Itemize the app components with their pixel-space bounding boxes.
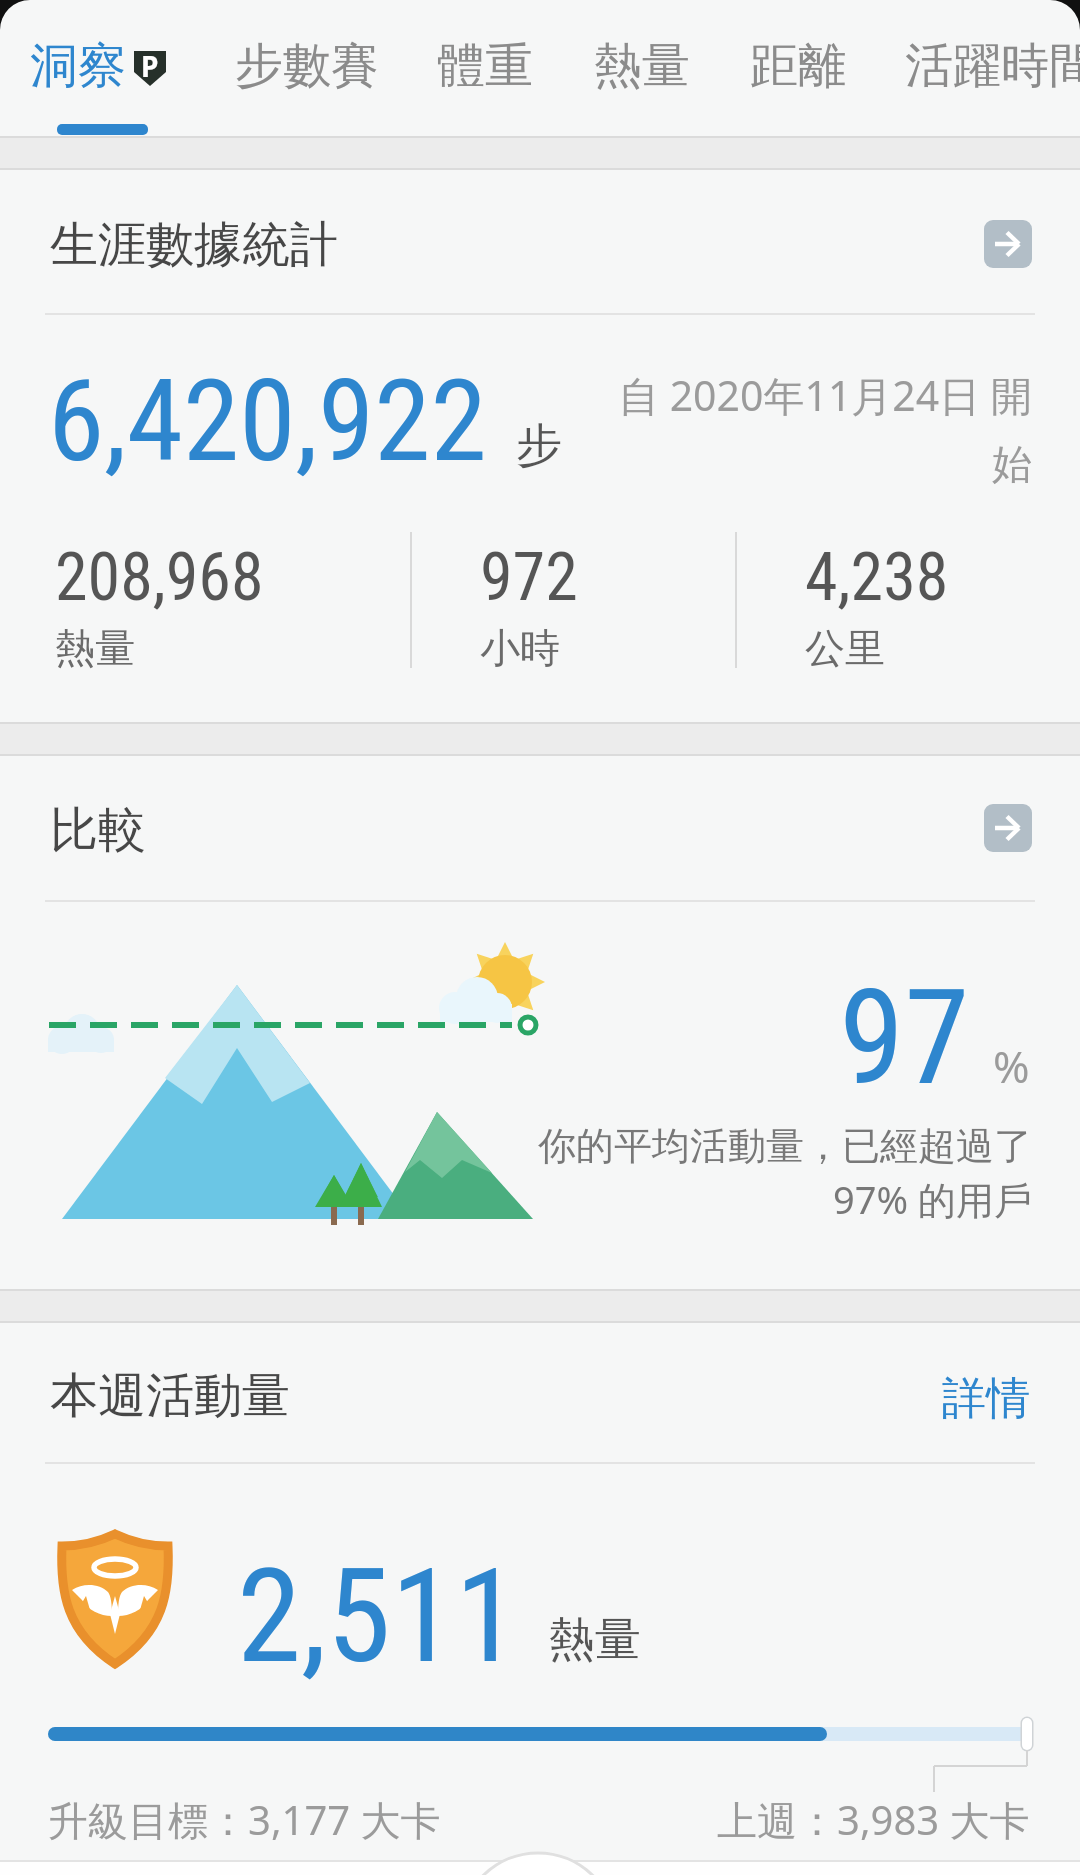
staticText: 公里 — [805, 623, 885, 673]
staticText: 6,420,922 — [48, 354, 487, 488]
staticText: 208,968 — [55, 539, 264, 616]
staticText: 詳情 — [942, 1371, 1030, 1426]
staticText: 972 — [480, 539, 578, 616]
staticText: 2,511 — [237, 1540, 520, 1692]
staticText: 本週活動量 — [50, 1366, 290, 1426]
staticText: 自 2020年11月24日 開 — [618, 367, 1032, 423]
button[interactable] — [984, 220, 1032, 268]
staticText: 熱量 — [594, 36, 690, 96]
staticText: 升級目標：3,177 大卡 — [48, 1792, 441, 1847]
button[interactable]: 距離 — [750, 0, 1080, 166]
staticText: 生涯數據統計 — [50, 215, 338, 275]
button[interactable]: 活躍時間 — [905, 0, 1080, 166]
button[interactable] — [984, 804, 1032, 852]
staticText: 比較 — [50, 800, 146, 860]
button[interactable]: 熱量 — [594, 0, 1080, 166]
staticText: 上週：3,983 大卡 — [717, 1792, 1030, 1847]
staticText: % — [993, 1036, 1030, 1096]
staticText: 步數賽 — [235, 36, 379, 96]
button[interactable]: 洞察 — [30, 0, 730, 166]
staticText: 你的平均活動量，已經超過了 — [538, 1122, 1032, 1170]
staticText: 熱量 — [55, 623, 135, 673]
staticText: 始 — [992, 439, 1032, 489]
staticText: 4,238 — [805, 539, 949, 616]
staticText: 熱量 — [549, 1611, 641, 1669]
button[interactable]: 體重 — [437, 0, 1080, 166]
staticText: 97 — [839, 961, 970, 1116]
staticText: 距離 — [750, 36, 846, 96]
staticText: 活躍時間 — [905, 36, 1080, 96]
staticText: 步 — [516, 417, 562, 475]
staticText: P — [141, 47, 159, 85]
staticText: 洞察 — [30, 36, 126, 96]
button[interactable]: 步數賽 — [235, 0, 935, 166]
staticText: 體重 — [437, 36, 533, 96]
staticText: 小時 — [480, 623, 560, 673]
staticText: 97% 的用戶 — [833, 1173, 1032, 1225]
button[interactable]: 詳情 — [330, 1298, 1030, 1498]
